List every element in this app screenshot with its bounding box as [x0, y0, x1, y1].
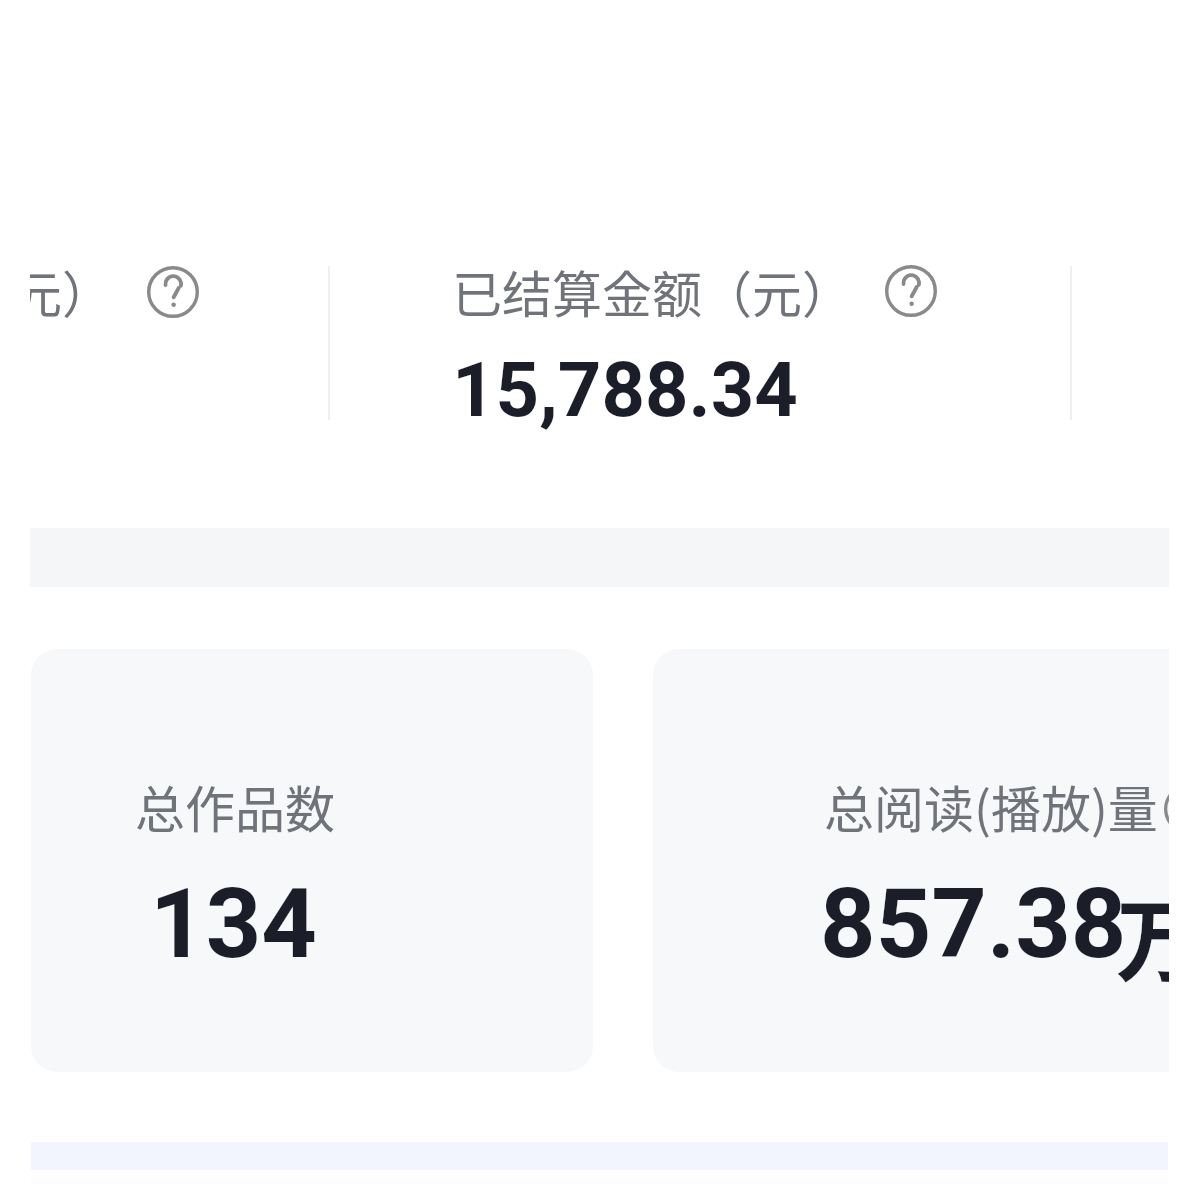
button[interactable]: 元）	[30, 240, 212, 350]
button[interactable]: Help	[885, 265, 937, 317]
button[interactable]: Help	[1164, 784, 1169, 834]
staticText: 已结算金额（元）	[452, 255, 852, 327]
staticText: 万	[1116, 870, 1169, 1000]
staticText: 元）	[30, 255, 112, 327]
button[interactable]: 总阅读(播放)量	[653, 649, 1169, 1072]
staticText: 总作品数	[135, 770, 335, 842]
staticText: 15,788.34	[452, 345, 798, 434]
button[interactable]: Help	[147, 266, 199, 318]
staticText: 总阅读(播放)量	[824, 770, 1158, 842]
button[interactable]: 总作品数	[31, 649, 593, 1072]
button[interactable]: 已结算金额（元）	[330, 240, 1070, 430]
staticText: 134	[150, 867, 317, 981]
staticText: 857.38	[820, 867, 1127, 981]
